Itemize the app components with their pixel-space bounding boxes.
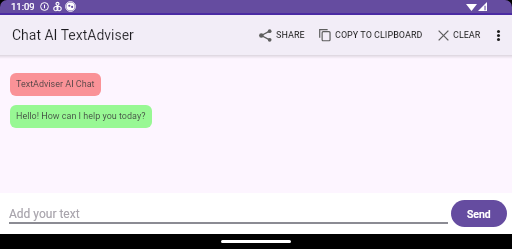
staticText: Chat AI TextAdviser — [12, 27, 134, 43]
staticText: SHARE — [276, 30, 305, 41]
staticText: Add your text — [9, 207, 80, 221]
staticText: CLEAR — [453, 30, 481, 41]
button[interactable]: CLEAR — [435, 25, 484, 46]
button[interactable]: TextAdviser AI Chat — [10, 73, 101, 96]
staticText: Hello! How can I help you today? — [16, 111, 146, 122]
button[interactable]: Hello! How can I help you today? — [10, 105, 152, 128]
staticText: COPY TO CLIPBOARD — [335, 30, 423, 41]
staticText: Send — [467, 208, 491, 220]
button[interactable]: COPY TO CLIPBOARD — [316, 24, 426, 46]
button[interactable]: SHARE — [256, 24, 308, 47]
staticText: 11:09 — [11, 1, 35, 12]
button[interactable]: Send — [451, 200, 507, 227]
button[interactable]: More options — [484, 20, 508, 50]
staticText: TextAdviser AI Chat — [16, 79, 95, 90]
